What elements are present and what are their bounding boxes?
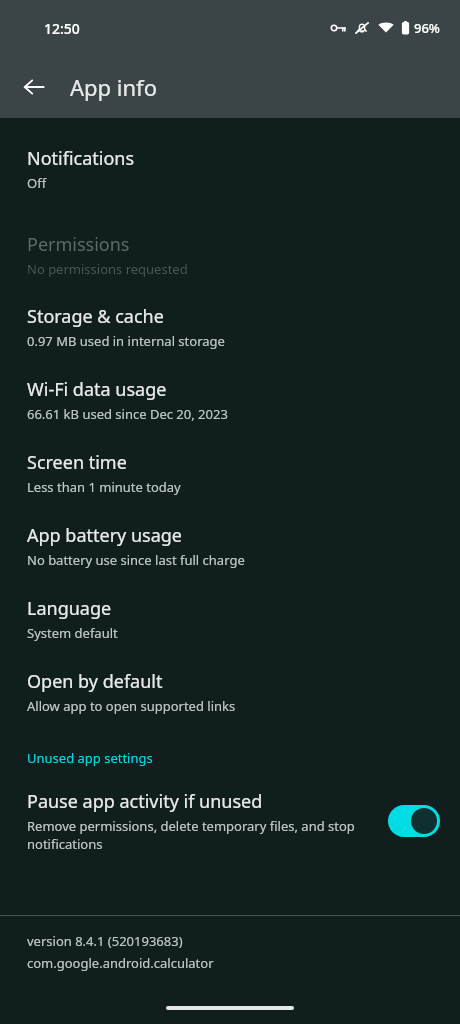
staticText: No permissions requested [27, 260, 188, 278]
staticText: No battery use since last full charge [27, 551, 245, 569]
staticText: Pause app activity if unused [27, 789, 263, 814]
button[interactable]: Storage & cache [0, 304, 460, 350]
staticText: 96% [414, 19, 440, 37]
button[interactable]: Pause app activity if unused toggle [388, 805, 440, 837]
staticText: Allow app to open supported links [27, 697, 236, 715]
staticText: Unused app settings [27, 749, 153, 767]
button[interactable]: Open by default [0, 669, 460, 715]
button[interactable]: Screen time [0, 450, 460, 496]
staticText: App battery usage [27, 523, 182, 548]
button[interactable]: Wi-Fi data usage [0, 377, 460, 423]
staticText: Screen time [27, 450, 127, 475]
button[interactable]: Language [0, 596, 460, 642]
button: Permissions [0, 232, 460, 278]
staticText: 0.97 MB used in internal storage [27, 332, 225, 350]
button[interactable]: Notifications [0, 132, 460, 206]
button[interactable]: App battery usage [0, 523, 460, 569]
staticText: 12:50 [44, 19, 80, 38]
staticText: Less than 1 minute today [27, 478, 181, 496]
button[interactable]: Back [12, 65, 56, 109]
button[interactable]: Pause app activity if unused [0, 789, 460, 853]
staticText: Off [27, 174, 47, 192]
staticText: version 8.4.1 (520193683) [27, 932, 183, 950]
staticText: 66.61 kB used since Dec 20, 2023 [27, 405, 228, 423]
staticText: App info [70, 72, 157, 102]
staticText: Language [27, 596, 112, 621]
staticText: com.google.android.calculator [27, 954, 214, 972]
staticText: Remove permissions, delete temporary fil… [27, 817, 374, 853]
staticText: System default [27, 624, 118, 642]
staticText: Storage & cache [27, 304, 164, 329]
staticText: Open by default [27, 669, 163, 694]
staticText: Notifications [27, 146, 135, 171]
staticText: Wi-Fi data usage [27, 377, 167, 402]
staticText: Permissions [27, 232, 130, 257]
